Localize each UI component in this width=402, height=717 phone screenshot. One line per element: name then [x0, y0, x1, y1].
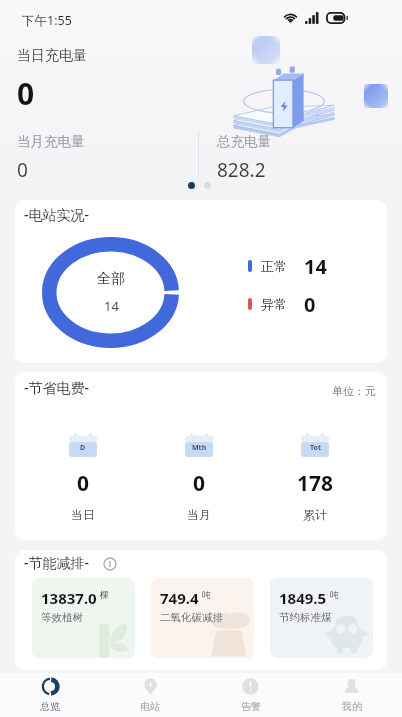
staticText: 吨 — [330, 589, 339, 600]
staticText: 当月 — [187, 507, 211, 522]
staticText: 下午1:55 — [22, 12, 72, 29]
staticText: 13837.0 — [41, 588, 97, 608]
staticText: 14 — [104, 297, 119, 315]
staticText: 当日 — [71, 507, 95, 522]
button[interactable]: Info — [103, 557, 117, 571]
staticText: Tot — [310, 443, 321, 453]
staticText: 正常 — [261, 258, 287, 274]
staticText: 0 — [17, 157, 28, 183]
button[interactable]: 异常 — [248, 291, 316, 317]
staticText: 等效植树 — [41, 611, 83, 624]
staticText: 异常 — [261, 296, 287, 312]
staticText: -电站实况- — [24, 205, 89, 224]
staticText: 我的 — [342, 700, 362, 713]
button[interactable]: 电站 — [100, 673, 200, 717]
button[interactable]: 13837.0 — [32, 578, 135, 658]
staticText: 0 — [77, 469, 90, 498]
button[interactable]: 告警 — [200, 673, 301, 717]
staticText: 棵 — [100, 589, 109, 600]
staticText: -节省电费- — [24, 378, 89, 397]
staticText: 0 — [17, 73, 35, 114]
staticText: 吨 — [202, 589, 211, 600]
button[interactable]: 1849.5 — [270, 578, 373, 658]
staticText: Mth — [192, 443, 207, 453]
button[interactable]: Tot — [257, 433, 373, 522]
staticText: 当月充电量 — [17, 133, 85, 150]
staticText: 0 — [193, 469, 206, 498]
staticText: 749.4 — [160, 588, 199, 608]
staticText: 178 — [297, 469, 334, 498]
staticText: 828.2 — [217, 157, 266, 183]
staticText: 0 — [304, 291, 316, 317]
button[interactable]: 我的 — [301, 673, 402, 717]
staticText: 当日充电量 — [17, 47, 87, 65]
staticText: -节能减排- — [24, 553, 89, 572]
staticText: 14 — [304, 253, 327, 279]
staticText: 总充电量 — [217, 133, 271, 150]
staticText: 累计 — [303, 507, 327, 522]
button[interactable]: D — [25, 433, 141, 522]
staticText: 告警 — [241, 700, 261, 713]
button[interactable]: Mth — [141, 433, 257, 522]
staticText: 单位：元 — [332, 384, 376, 398]
staticText: 节约标准煤 — [279, 611, 332, 624]
button[interactable]: 749.4 — [151, 578, 254, 658]
staticText: 二氧化碳减排 — [160, 611, 223, 624]
staticText: 总览 — [40, 700, 60, 713]
button[interactable]: 正常 — [248, 253, 327, 279]
button[interactable]: 总览 — [0, 673, 100, 717]
staticText: 1849.5 — [279, 588, 327, 608]
staticText: 电站 — [140, 700, 160, 713]
staticText: D — [80, 443, 86, 453]
staticText: 全部 — [97, 270, 125, 288]
